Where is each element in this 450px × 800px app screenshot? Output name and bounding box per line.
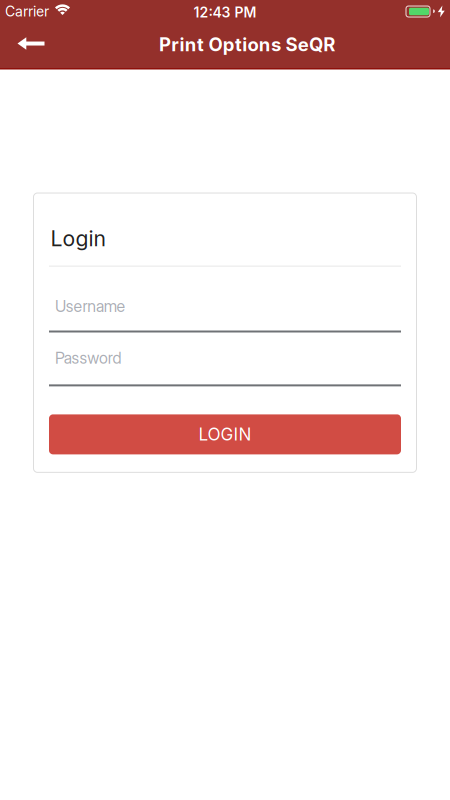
staticText: 12:43 PM: [193, 4, 256, 21]
staticText: Login: [50, 226, 105, 251]
staticText: Password: [55, 348, 122, 367]
staticText: Username: [55, 297, 126, 315]
button[interactable]: Back: [0, 28, 56, 68]
staticText: Print Options SeQR: [159, 34, 335, 55]
staticText: LOGIN: [198, 424, 251, 444]
staticText: Carrier: [5, 3, 49, 20]
button[interactable]: LOGIN: [49, 414, 401, 454]
